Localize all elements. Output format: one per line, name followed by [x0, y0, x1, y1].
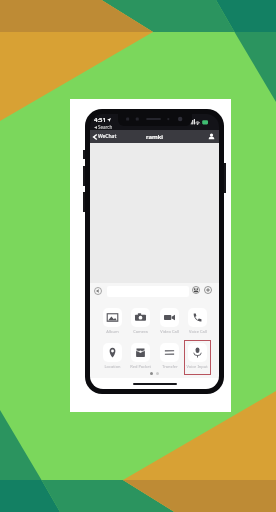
staticText: ramki: [146, 133, 163, 141]
button[interactable]: Transfer: [155, 343, 183, 371]
staticText: Voice Input: [186, 364, 208, 369]
staticText: Location: [104, 364, 121, 369]
staticText: Album: [106, 329, 119, 334]
staticText: Video Call: [160, 329, 179, 334]
button[interactable]: Location: [98, 343, 126, 371]
button[interactable]: Voice Input: [183, 343, 211, 371]
button[interactable]: More options: [204, 286, 212, 294]
button[interactable]: Album: [98, 308, 126, 336]
staticText: 4:51: [94, 116, 106, 124]
button[interactable]: Video Call: [155, 308, 183, 336]
button[interactable]: Contact profile: [208, 133, 215, 140]
staticText: Red Packet: [130, 364, 151, 369]
button[interactable]: Voice Call: [183, 308, 211, 336]
button[interactable]: Voice message: [94, 287, 102, 295]
staticText: Voice Call: [189, 329, 207, 334]
button[interactable]: Camera: [126, 308, 154, 336]
staticText: WeChat: [98, 133, 117, 140]
staticText: Search: [98, 124, 113, 130]
button[interactable]: Emoji: [192, 286, 200, 294]
staticText: Camera: [133, 329, 148, 334]
staticText: Transfer: [162, 364, 178, 369]
button[interactable]: Red Packet: [126, 343, 154, 371]
button[interactable]: WeChat: [93, 133, 117, 140]
